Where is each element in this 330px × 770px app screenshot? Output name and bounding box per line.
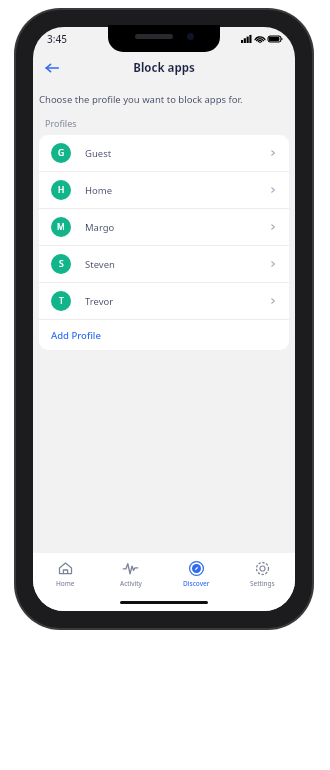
button[interactable]: Discover <box>163 553 229 595</box>
staticText: T <box>59 295 64 307</box>
button[interactable]: Add Profile <box>39 320 289 350</box>
staticText: Settings <box>250 579 275 588</box>
staticText: Home <box>85 184 113 197</box>
staticText: Steven <box>85 258 115 271</box>
button[interactable]: T <box>39 283 289 319</box>
staticText: Choose the profile you want to block app… <box>39 93 243 106</box>
button[interactable]: H <box>39 172 289 208</box>
button[interactable]: Back <box>39 55 65 81</box>
other: Discover <box>189 561 204 576</box>
button[interactable]: G <box>39 135 289 171</box>
staticText: G <box>58 147 65 159</box>
staticText: Block apps <box>133 60 195 76</box>
staticText: Guest <box>85 147 112 160</box>
staticText: Add Profile <box>51 329 101 342</box>
staticText: Margo <box>85 221 115 234</box>
staticText: S <box>59 258 64 270</box>
staticText: H <box>58 184 65 196</box>
button[interactable]: S <box>39 246 289 282</box>
staticText: 3:45 <box>47 32 67 46</box>
staticText: M <box>57 221 65 233</box>
button[interactable]: Settings <box>229 553 295 595</box>
staticText: Home <box>56 579 75 588</box>
button[interactable]: Activity <box>98 553 163 595</box>
staticText: Trevor <box>85 295 114 308</box>
staticText: Discover <box>183 579 210 588</box>
staticText: Activity <box>120 579 142 588</box>
button[interactable]: Home <box>33 553 98 595</box>
button[interactable]: M <box>39 209 289 245</box>
staticText: Profiles <box>45 117 77 129</box>
